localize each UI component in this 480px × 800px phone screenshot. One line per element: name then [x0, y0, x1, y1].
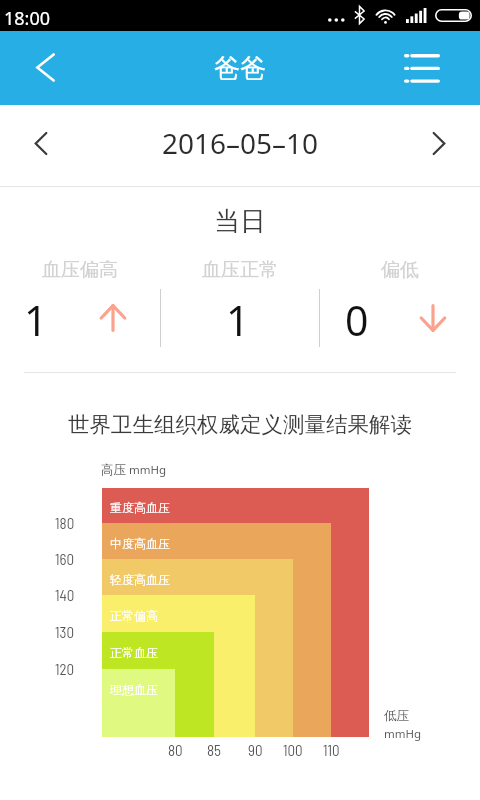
staticText: 当日: [214, 205, 266, 237]
button[interactable]: Menu: [394, 31, 480, 105]
button[interactable]: Next day: [398, 105, 480, 186]
staticText: 中度高血压: [110, 536, 170, 551]
staticText: 110: [323, 741, 340, 759]
staticText: 120: [55, 660, 75, 678]
staticText: 正常偏高: [110, 608, 158, 623]
staticText: 80: [168, 741, 183, 759]
staticText: mmHg: [384, 726, 422, 742]
staticText: 100: [283, 741, 303, 759]
staticText: 重度高血压: [110, 500, 170, 515]
staticText: 血压偏高: [42, 258, 118, 280]
staticText: 0: [345, 292, 369, 338]
staticText: 理想血压: [110, 682, 158, 697]
staticText: 160: [55, 550, 75, 568]
staticText: 2016–05–10: [162, 124, 319, 162]
staticText: 180: [55, 514, 75, 532]
staticText: 血压正常: [202, 258, 278, 280]
staticText: 130: [55, 623, 75, 641]
staticText: 世界卫生组织权威定义测量结果解读: [68, 411, 412, 437]
staticText: 140: [55, 586, 75, 604]
staticText: 低压: [384, 708, 409, 724]
staticText: 85: [207, 741, 221, 759]
staticText: 18:00: [4, 6, 51, 26]
staticText: 1: [24, 292, 48, 338]
button[interactable]: Previous day: [0, 105, 82, 186]
staticText: 90: [248, 741, 263, 759]
staticText: 轻度高血压: [110, 572, 170, 587]
staticText: 高压: [101, 462, 126, 478]
staticText: 偏低: [381, 258, 419, 280]
button[interactable]: Back: [0, 31, 86, 105]
staticText: 1: [226, 292, 250, 338]
staticText: 爸爸: [214, 52, 266, 85]
staticText: mmHg: [126, 462, 167, 478]
staticText: 正常血压: [110, 645, 158, 660]
